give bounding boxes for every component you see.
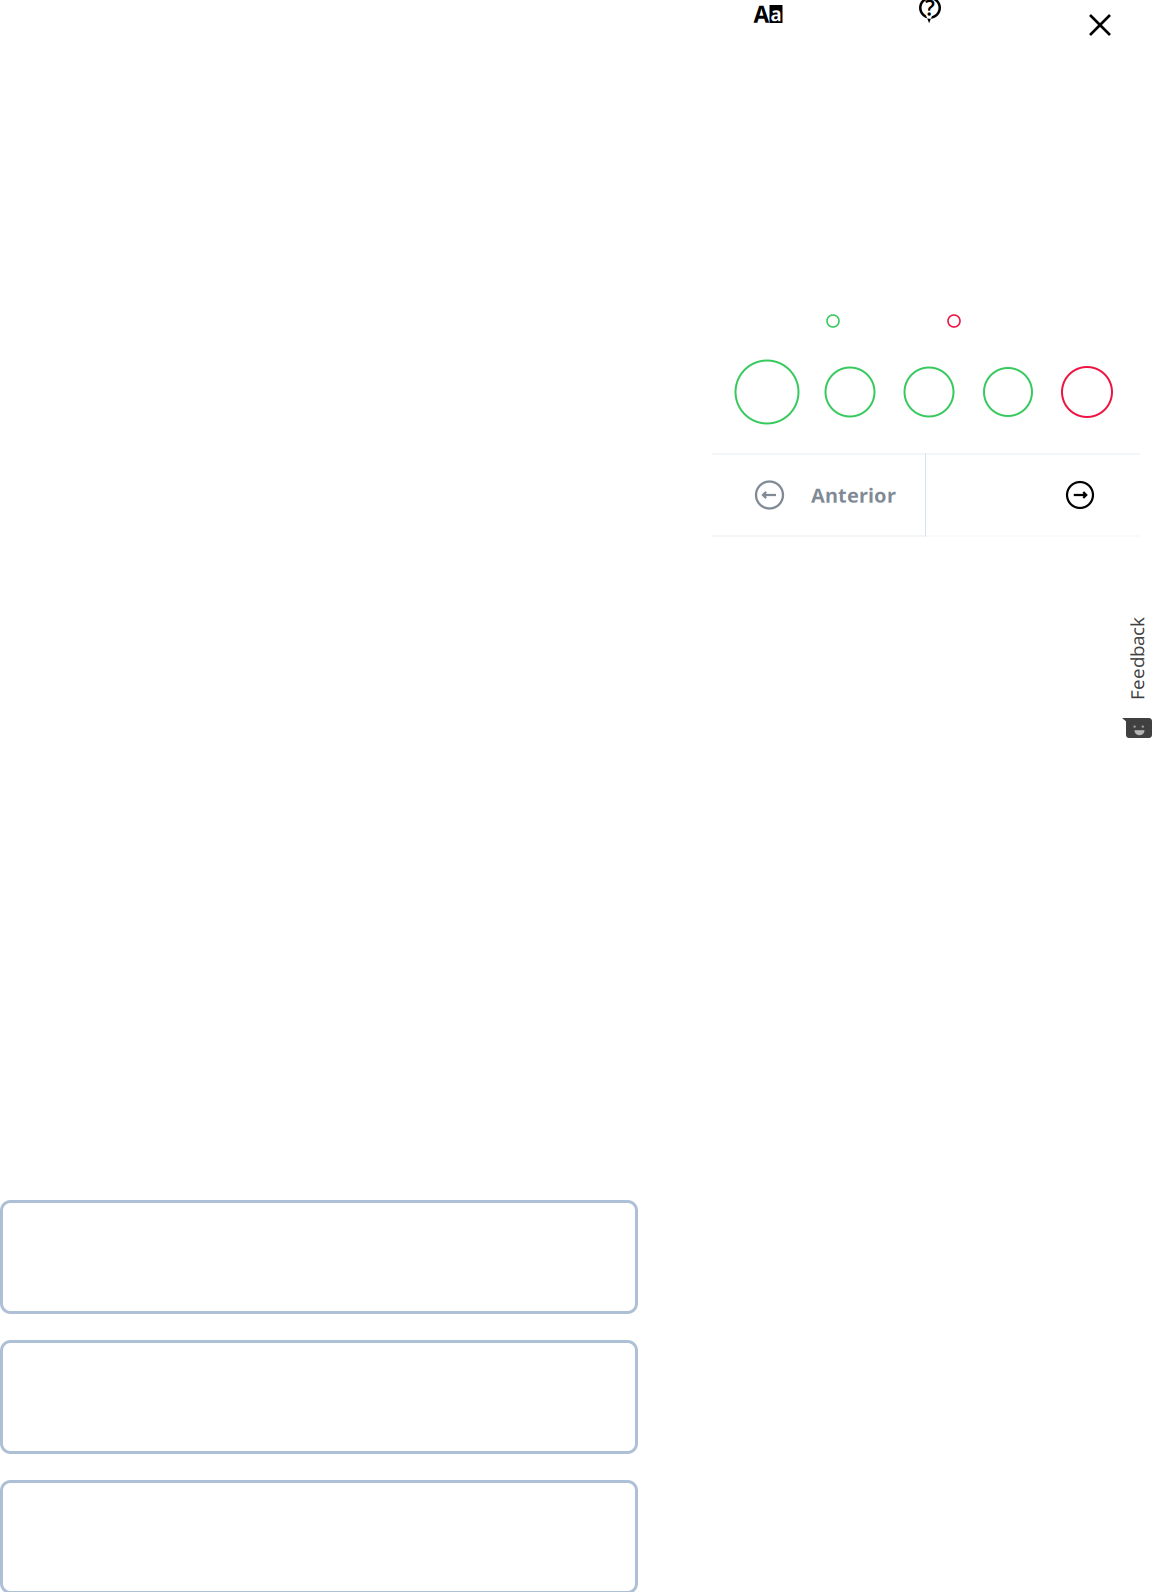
button[interactable]: Option 5 [1062, 367, 1112, 417]
button[interactable]: Option 4 [984, 368, 1032, 416]
staticText: A [753, 0, 769, 29]
button[interactable]: Feedback [1122, 616, 1152, 738]
staticText: Anterior [811, 482, 896, 508]
button[interactable]: Option 3 [904, 367, 953, 416]
button[interactable]: Next [926, 453, 1140, 536]
button[interactable]: Close [1090, 15, 1110, 35]
button[interactable] [0, 1200, 638, 1314]
button[interactable]: Text size [753, 0, 782, 29]
button[interactable]: Anterior [712, 453, 926, 536]
button[interactable]: Option 1 [735, 360, 798, 423]
staticText: Feedback [1095, 646, 1166, 671]
staticText: a [770, 2, 781, 26]
button[interactable]: Option 2 [825, 367, 874, 416]
button[interactable] [0, 1340, 638, 1454]
button[interactable]: Help [919, 0, 941, 23]
staticText: ? [925, 0, 935, 22]
button[interactable] [0, 1480, 638, 1592]
